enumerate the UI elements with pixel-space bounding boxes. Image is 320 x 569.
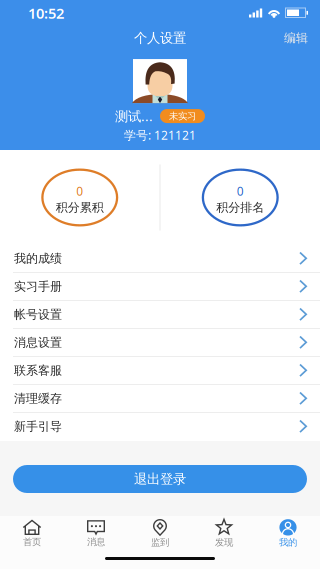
staticText: 联系客服 <box>14 363 62 378</box>
staticText: 未实习 <box>169 110 196 122</box>
staticText: 发现 <box>215 537 233 548</box>
staticText: 监到 <box>151 537 169 548</box>
button[interactable]: 消息设置 <box>0 329 320 357</box>
staticText: 消息设置 <box>14 335 62 350</box>
staticText: 个人设置 <box>134 30 186 46</box>
staticText: 积分排名 <box>216 200 264 215</box>
button[interactable]: 退出登录 <box>13 465 307 493</box>
staticText: 首页 <box>23 536 41 548</box>
button[interactable]: 清理缓存 <box>0 385 320 413</box>
button[interactable]: 编辑 <box>272 26 320 50</box>
button[interactable]: 0 <box>200 166 280 228</box>
staticText: 我的成绩 <box>14 251 62 266</box>
button[interactable]: 0 <box>40 166 120 228</box>
staticText: 10:52 <box>28 3 64 23</box>
button[interactable]: 我的 <box>256 517 320 549</box>
staticText: 我的 <box>279 537 297 548</box>
button[interactable]: 帐号设置 <box>0 301 320 329</box>
button[interactable]: 实习手册 <box>0 273 320 301</box>
staticText: 新手引导 <box>14 419 62 434</box>
button[interactable]: 监到 <box>128 517 192 549</box>
button[interactable]: 发现 <box>192 517 256 549</box>
staticText: 测试... <box>115 107 153 125</box>
button[interactable]: 新手引导 <box>0 413 320 441</box>
button[interactable]: 消息 <box>64 517 128 549</box>
staticText: 编辑 <box>284 31 308 45</box>
staticText: 帐号设置 <box>14 307 62 322</box>
button[interactable]: 联系客服 <box>0 357 320 385</box>
button[interactable]: 我的成绩 <box>0 245 320 273</box>
staticText: 0 <box>237 183 244 199</box>
staticText: 实习手册 <box>14 279 62 294</box>
staticText: 清理缓存 <box>14 391 62 406</box>
staticText: 积分累积 <box>56 200 104 215</box>
staticText: 0 <box>76 183 83 199</box>
staticText: 消息 <box>87 536 105 548</box>
staticText: 学号: 121121 <box>124 127 196 143</box>
button[interactable]: 首页 <box>0 517 64 549</box>
staticText: 退出登录 <box>134 471 186 487</box>
